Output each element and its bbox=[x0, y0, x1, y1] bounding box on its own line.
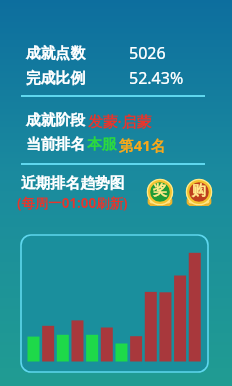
staticText: 近期排名趋势图 bbox=[21, 174, 125, 193]
staticText: 5026 bbox=[129, 42, 166, 64]
staticText: (每周一01:00刷新) bbox=[17, 194, 128, 212]
staticText: 本服 bbox=[87, 135, 117, 154]
staticText: 完成比例 bbox=[26, 69, 86, 88]
staticText: 52.43% bbox=[129, 67, 184, 89]
staticText: 奖 bbox=[153, 182, 167, 200]
staticText: 发蒙·启蒙 bbox=[88, 111, 152, 131]
staticText: 购 bbox=[192, 182, 206, 200]
button[interactable]: 奖 bbox=[143, 175, 177, 209]
staticText: 第41名 bbox=[119, 135, 166, 155]
button[interactable]: 购 bbox=[182, 175, 216, 209]
staticText: 成就点数 bbox=[26, 44, 86, 63]
staticText: 成就阶段 bbox=[26, 111, 86, 130]
staticText: 当前排名 bbox=[26, 135, 86, 154]
